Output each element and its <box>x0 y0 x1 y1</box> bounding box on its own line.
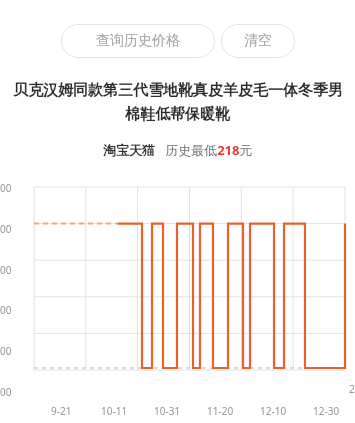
staticText: 00 <box>0 344 12 356</box>
staticText: 清空 <box>244 32 272 50</box>
staticText: 11-20 <box>207 404 234 418</box>
button[interactable]: 清空 <box>221 24 295 58</box>
staticText: 00 <box>0 181 12 193</box>
staticText: 9-21 <box>51 404 72 418</box>
staticText: 2 <box>349 382 355 396</box>
staticText: 00 <box>0 263 12 275</box>
staticText: 淘宝天猫 历史最低218元 <box>103 141 253 159</box>
button[interactable]: 查询历史价格 <box>61 24 215 58</box>
staticText: 00 <box>0 222 12 234</box>
staticText: 10-31 <box>154 404 181 418</box>
staticText: 12-10 <box>260 404 287 418</box>
staticText: 贝克汉姆同款第三代雪地靴真皮羊皮毛一体冬季男 <box>13 81 343 100</box>
staticText: 10-11 <box>101 404 128 418</box>
staticText: 12-30 <box>313 404 340 418</box>
staticText: 00 <box>0 303 12 315</box>
staticText: 查询历史价格 <box>96 32 180 50</box>
staticText: 棉鞋低帮保暖靴 <box>125 105 230 124</box>
staticText: 00 <box>0 385 12 397</box>
